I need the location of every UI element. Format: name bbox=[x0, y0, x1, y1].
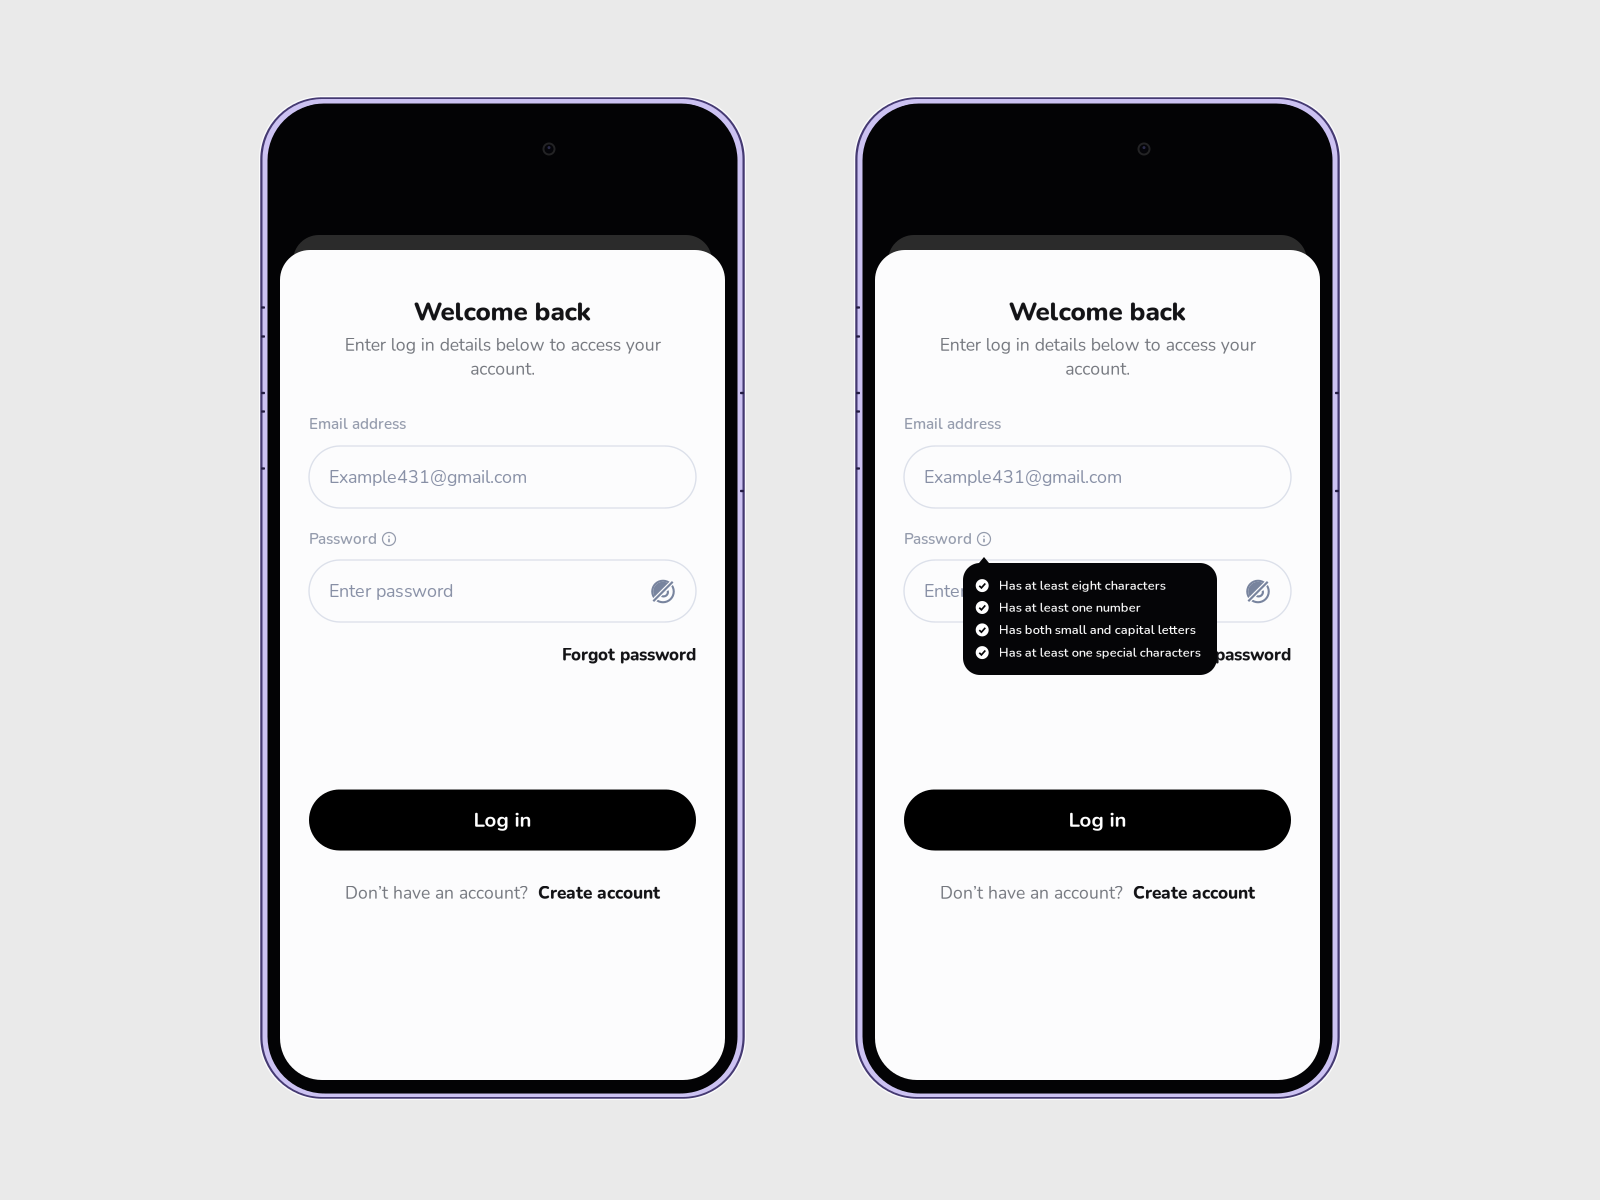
staticText: Enter password bbox=[924, 579, 1048, 603]
button[interactable]: Password requirements bbox=[382, 532, 396, 546]
button[interactable]: Show password bbox=[641, 569, 685, 613]
staticText: Welcome back bbox=[1008, 294, 1186, 330]
staticText: Has at least one special characters bbox=[999, 644, 1201, 661]
button[interactable]: Create account bbox=[1133, 881, 1255, 905]
staticText: Log in bbox=[473, 806, 531, 834]
button[interactable]: Log in bbox=[309, 789, 696, 850]
staticText: Email address bbox=[904, 414, 1001, 434]
staticText: Welcome back bbox=[413, 294, 591, 330]
staticText: Example431@gmail.com bbox=[329, 465, 527, 489]
button[interactable]: Example431@gmail.com bbox=[309, 446, 696, 508]
staticText: Log in bbox=[1068, 806, 1126, 834]
staticText: Example431@gmail.com bbox=[924, 465, 1122, 489]
staticText: Don’t have an account? bbox=[940, 881, 1123, 905]
staticText: Forgot password bbox=[562, 643, 696, 667]
button[interactable]: Password requirements bbox=[977, 532, 991, 546]
staticText: Enter log in details below to access you… bbox=[344, 333, 660, 381]
staticText: Has both small and capital letters bbox=[999, 621, 1196, 639]
staticText: Enter log in details below to access you… bbox=[939, 333, 1255, 381]
button[interactable]: Example431@gmail.com bbox=[904, 446, 1291, 508]
button[interactable]: Forgot password bbox=[562, 643, 696, 667]
staticText: Email address bbox=[309, 414, 406, 434]
staticText: Create account bbox=[538, 881, 660, 905]
staticText: Forgot password bbox=[1157, 643, 1291, 667]
staticText: Password bbox=[904, 529, 972, 549]
button[interactable]: Forgot password bbox=[1157, 643, 1291, 667]
button[interactable]: Enter password bbox=[904, 560, 1291, 622]
button[interactable]: Create account bbox=[538, 881, 660, 905]
button[interactable]: Show password bbox=[1236, 569, 1280, 613]
button[interactable]: Log in bbox=[904, 789, 1291, 850]
staticText: Don’t have an account? bbox=[345, 881, 528, 905]
staticText: Has at least eight characters bbox=[999, 577, 1166, 594]
button[interactable]: Enter password bbox=[309, 560, 696, 622]
staticText: Enter password bbox=[329, 579, 453, 603]
staticText: Create account bbox=[1133, 881, 1255, 905]
staticText: Has at least one number bbox=[999, 599, 1141, 616]
staticText: Password bbox=[309, 529, 377, 549]
